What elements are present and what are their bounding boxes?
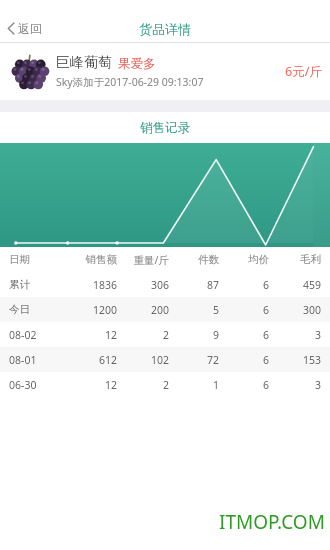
staticText: 重量/斤 [117,253,169,267]
staticText: 均价 [219,253,269,266]
staticText: 3 [269,328,321,342]
staticText: 5 [169,303,219,317]
staticText: 2 [117,378,169,392]
button[interactable]: 今日 [0,297,330,322]
staticText: 306 [117,278,169,292]
staticText: 06-30 [9,378,65,392]
staticText: 08-02 [9,328,65,342]
staticText: 9 [169,328,219,342]
staticText: 货品详情 [139,21,191,37]
staticText: 今日 [9,303,65,316]
staticText: 销售记录 [140,120,190,136]
button[interactable]: 巨峰葡萄 [0,43,330,100]
button[interactable]: 累计 [0,272,330,297]
staticText: 612 [65,353,117,367]
staticText: 件数 [169,253,219,266]
staticText: 6元/斤 [285,63,322,80]
staticText: 6 [219,378,269,392]
staticText: 3 [269,378,321,392]
staticText: 2 [117,328,169,342]
staticText: 6 [219,303,269,317]
staticText: 日期 [9,253,65,266]
staticText: 1836 [65,278,117,292]
staticText: 200 [117,303,169,317]
button[interactable]: 返回 [0,17,52,40]
staticText: 12 [65,328,117,342]
staticText: 153 [269,353,321,367]
button[interactable]: 08-02 [0,322,330,347]
staticText: 72 [169,353,219,367]
staticText: 毛利 [269,253,321,266]
staticText: 6 [219,278,269,292]
staticText: 87 [169,278,219,292]
staticText: 巨峰葡萄 [56,54,112,72]
staticText: 1 [169,378,219,392]
staticText: 300 [269,303,321,317]
staticText: 08-01 [9,353,65,367]
staticText: 累计 [9,278,65,291]
button[interactable]: 08-01 [0,347,330,372]
staticText: 459 [269,278,321,292]
staticText: Sky添加于2017-06-29 09:13:07 [56,75,204,89]
staticText: ITMOP.COM [219,509,325,535]
staticText: 6 [219,328,269,342]
staticText: 销售额 [65,253,117,266]
staticText: 果爱多 [118,56,156,72]
staticText: 1200 [65,303,117,317]
staticText: 102 [117,353,169,367]
button[interactable]: 06-30 [0,372,330,397]
staticText: 返回 [18,21,42,36]
staticText: 12 [65,378,117,392]
staticText: 6 [219,353,269,367]
